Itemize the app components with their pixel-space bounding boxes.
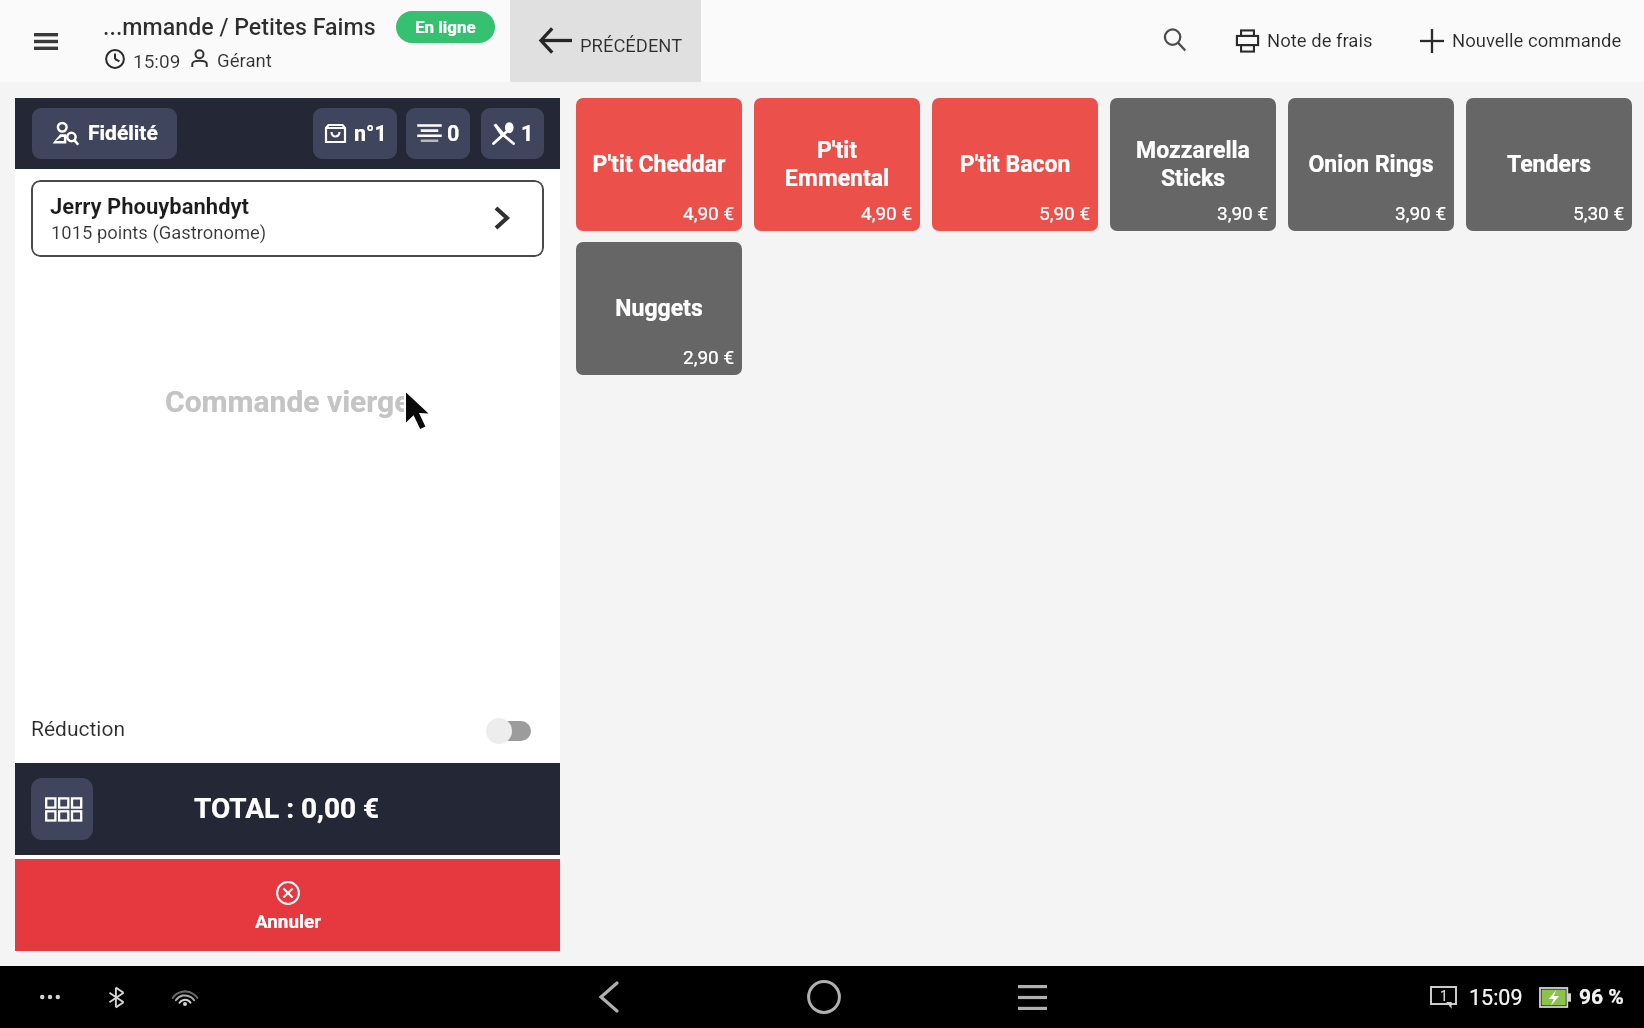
staticText: Tenders xyxy=(1474,151,1624,178)
button[interactable]: Accueil xyxy=(798,972,850,1022)
staticText: Nouvelle commande xyxy=(1452,30,1622,52)
staticText: Mozzarella Sticks xyxy=(1118,137,1268,192)
button[interactable]: n°1 xyxy=(313,108,397,159)
staticText: PRÉCÉDENT xyxy=(580,35,683,57)
staticText: 15:09 xyxy=(133,50,181,72)
staticText: Commande vierge xyxy=(165,384,411,419)
staticText: Jerry Phouybanhdyt xyxy=(50,194,250,220)
button[interactable]: Rechercher xyxy=(1152,17,1198,63)
staticText: 3,90 € xyxy=(1395,202,1447,224)
staticText: Note de frais xyxy=(1267,30,1373,52)
button[interactable]: Plus d'options xyxy=(28,975,72,1019)
button[interactable]: Jerry Phouybanhdyt xyxy=(31,180,544,257)
button[interactable]: Pavé numérique xyxy=(31,778,93,840)
staticText: P'tit Bacon xyxy=(940,151,1090,178)
button[interactable]: Réduction xyxy=(15,701,560,761)
staticText: 15:09 xyxy=(1469,985,1523,1010)
button[interactable]: P'tit Cheddar xyxy=(576,98,742,231)
staticText: Annuler xyxy=(255,911,321,933)
staticText: 0 xyxy=(447,121,460,146)
button[interactable]: Tenders xyxy=(1466,98,1632,231)
button[interactable]: Annuler xyxy=(15,859,560,951)
staticText: P'tit Emmental xyxy=(762,137,912,192)
button[interactable]: PRÉCÉDENT xyxy=(510,0,701,82)
staticText: P'tit Cheddar xyxy=(584,151,734,178)
button[interactable]: Nuggets xyxy=(576,242,742,375)
button[interactable]: Fidélité xyxy=(32,108,177,159)
other: Wi-Fi xyxy=(172,987,198,1007)
staticText: En ligne xyxy=(415,17,476,37)
staticText: 1 xyxy=(1440,988,1448,1004)
button[interactable]: Retour xyxy=(589,972,629,1022)
staticText: Gérant xyxy=(217,50,272,72)
staticText: 2,90 € xyxy=(683,346,735,368)
staticText: n°1 xyxy=(354,121,387,146)
button[interactable]: Note de frais xyxy=(1228,14,1381,68)
button[interactable]: P'tit Bacon xyxy=(932,98,1098,231)
staticText: 5,90 € xyxy=(1039,202,1091,224)
staticText: 5,30 € xyxy=(1573,202,1625,224)
other: Bluetooth xyxy=(95,977,138,1017)
button[interactable]: Mozzarella Sticks xyxy=(1110,98,1276,231)
button[interactable]: Menu xyxy=(12,10,80,72)
staticText: 4,90 € xyxy=(683,202,735,224)
staticText: TOTAL : 0,00 € xyxy=(194,792,380,825)
staticText: 96 % xyxy=(1579,985,1624,1010)
staticText: 3,90 € xyxy=(1217,202,1269,224)
button[interactable]: 0 xyxy=(406,108,470,159)
staticText: 4,90 € xyxy=(861,202,913,224)
button[interactable]: P'tit Emmental xyxy=(754,98,920,231)
button[interactable]: En ligne xyxy=(396,11,495,43)
button[interactable]: Applications récentes xyxy=(1007,972,1057,1022)
staticText: ...mmande / Petites Faims xyxy=(103,13,376,40)
button[interactable]: 1 xyxy=(481,108,544,159)
button[interactable]: Onion Rings xyxy=(1288,98,1454,231)
staticText: Fidélité xyxy=(88,121,158,146)
staticText: Nuggets xyxy=(584,295,734,322)
staticText: Réduction xyxy=(31,717,126,742)
staticText: Onion Rings xyxy=(1296,151,1446,178)
staticText: 1015 points (Gastronome) xyxy=(51,222,267,244)
staticText: 1 xyxy=(521,121,534,146)
button[interactable]: Nouvelle commande xyxy=(1412,14,1630,68)
